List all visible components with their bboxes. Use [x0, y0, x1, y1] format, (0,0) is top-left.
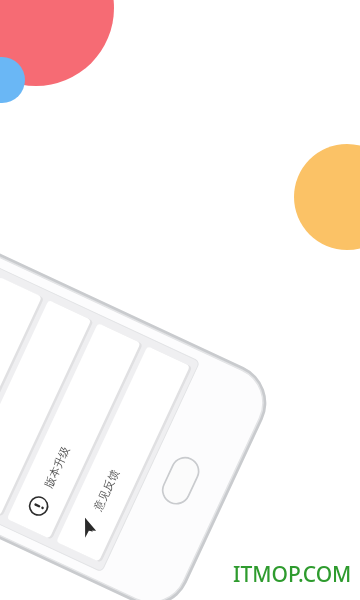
button[interactable]: App store promotional banner — [0, 0, 360, 600]
